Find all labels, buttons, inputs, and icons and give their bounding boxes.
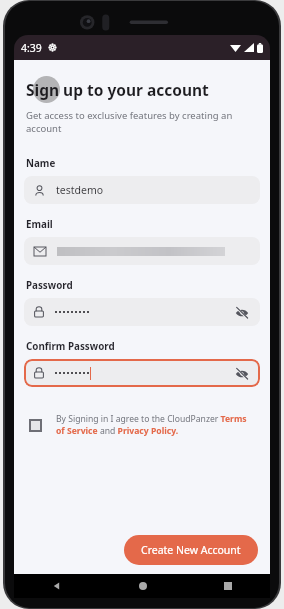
button[interactable]: Toggle password visibility bbox=[24, 359, 260, 387]
button[interactable]: Home bbox=[100, 574, 185, 598]
staticText: Get access to exclusive features by crea… bbox=[26, 109, 248, 135]
staticText: By Signing in I agree to the CloudPanzer… bbox=[56, 413, 252, 437]
button[interactable]: Create New Account bbox=[124, 535, 258, 565]
button[interactable]: By Signing in I agree to the CloudPanzer… bbox=[24, 411, 260, 439]
staticText: Confirm Password bbox=[26, 340, 115, 353]
staticText: Email bbox=[26, 218, 53, 231]
button[interactable]: Recent apps bbox=[185, 574, 270, 598]
button[interactable] bbox=[24, 237, 260, 265]
button[interactable]: Back bbox=[14, 574, 100, 598]
staticText: testdemo bbox=[56, 183, 104, 197]
button[interactable]: testdemo bbox=[24, 176, 260, 204]
staticText: Name bbox=[26, 157, 56, 170]
staticText: 4:39 bbox=[21, 41, 42, 55]
staticText: Create New Account bbox=[141, 543, 241, 557]
staticText: Password bbox=[26, 279, 73, 292]
button[interactable]: Toggle password visibility bbox=[24, 298, 260, 326]
button[interactable]: Toggle password visibility bbox=[233, 304, 250, 321]
button[interactable]: Toggle password visibility bbox=[233, 365, 250, 382]
staticText: Sign up to your account bbox=[26, 79, 209, 100]
